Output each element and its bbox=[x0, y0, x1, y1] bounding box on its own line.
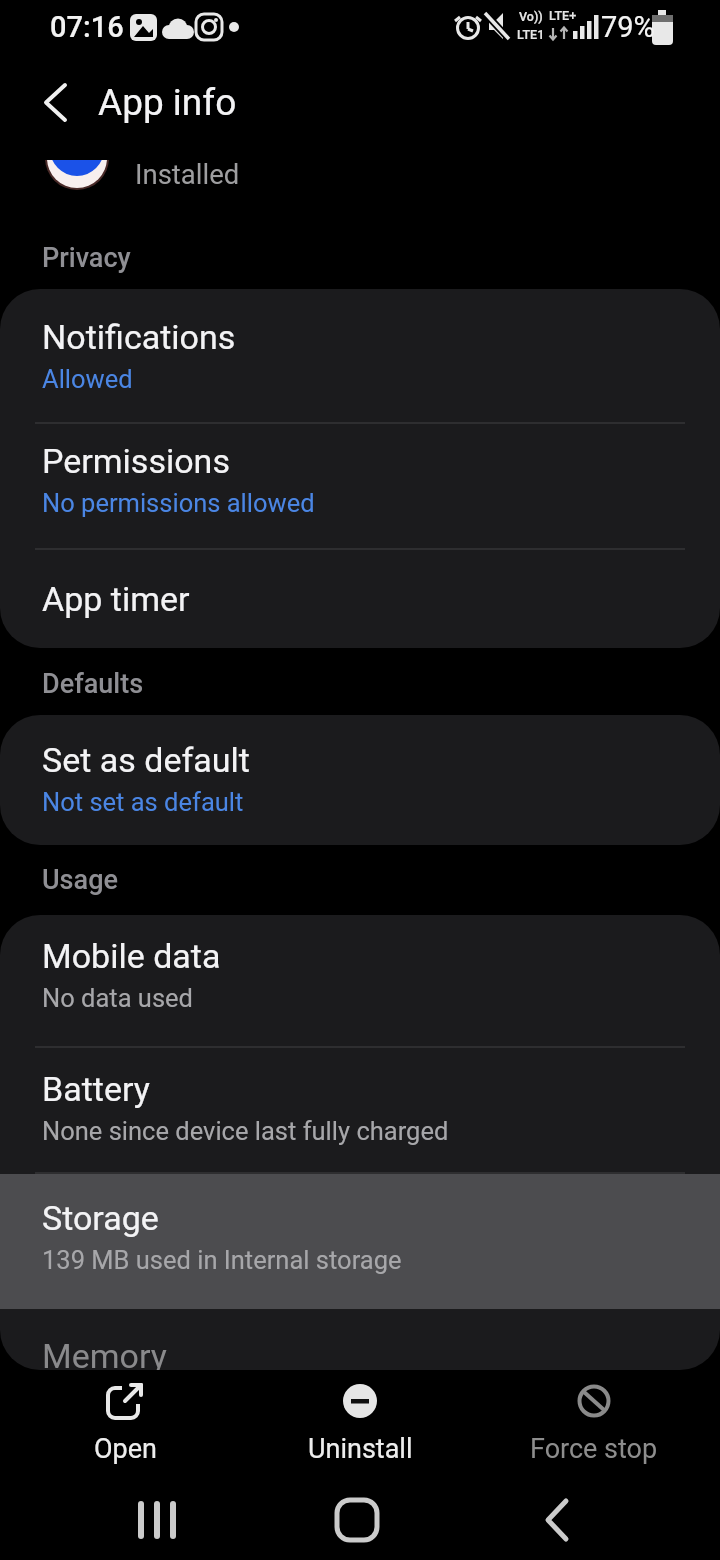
button[interactable]: Notifications bbox=[0, 289, 720, 422]
staticText: 07:16 bbox=[50, 10, 124, 44]
staticText: LTE1 bbox=[517, 27, 545, 42]
staticText: Force stop bbox=[530, 1433, 658, 1465]
staticText: Storage bbox=[42, 1198, 159, 1238]
staticText: No data used bbox=[42, 983, 193, 1013]
button[interactable]: App timer bbox=[0, 550, 720, 648]
staticText: 79% bbox=[601, 10, 655, 44]
staticText: Usage bbox=[42, 864, 118, 896]
button[interactable]: Open bbox=[45, 1380, 205, 1480]
staticText: Memory bbox=[42, 1336, 167, 1370]
staticText: Mobile data bbox=[42, 936, 221, 976]
staticText: Open bbox=[94, 1433, 157, 1465]
staticText: Set as default bbox=[42, 740, 250, 780]
staticText: Uninstall bbox=[308, 1433, 413, 1465]
staticText: Not set as default bbox=[42, 787, 244, 817]
staticText: 139 MB used in Internal storage bbox=[42, 1245, 402, 1275]
staticText: App info bbox=[98, 81, 237, 124]
button[interactable] bbox=[317, 1480, 397, 1560]
button[interactable]: Battery bbox=[0, 1048, 720, 1172]
button[interactable]: Storage bbox=[0, 1174, 720, 1309]
staticText: Allowed bbox=[42, 364, 133, 394]
button[interactable]: Set as default bbox=[0, 715, 720, 845]
staticText: App timer bbox=[42, 579, 190, 619]
staticText: Installed bbox=[135, 158, 240, 190]
staticText: Notifications bbox=[42, 317, 236, 357]
button[interactable] bbox=[117, 1480, 197, 1560]
staticText: Vo)) bbox=[519, 9, 543, 24]
button[interactable]: Uninstall bbox=[280, 1380, 440, 1480]
staticText: Defaults bbox=[42, 668, 144, 700]
staticText: Permissions bbox=[42, 441, 230, 481]
staticText: LTE+ bbox=[549, 8, 577, 23]
staticText: Privacy bbox=[42, 242, 131, 274]
staticText: None since device last fully charged bbox=[42, 1116, 449, 1146]
staticText: No permissions allowed bbox=[42, 488, 315, 518]
staticText: Battery bbox=[42, 1069, 150, 1109]
button[interactable]: Permissions bbox=[0, 424, 720, 548]
button[interactable]: Mobile data bbox=[0, 915, 720, 1046]
button[interactable]: Force stop bbox=[514, 1380, 674, 1480]
button[interactable] bbox=[28, 75, 84, 131]
button[interactable] bbox=[517, 1480, 597, 1560]
